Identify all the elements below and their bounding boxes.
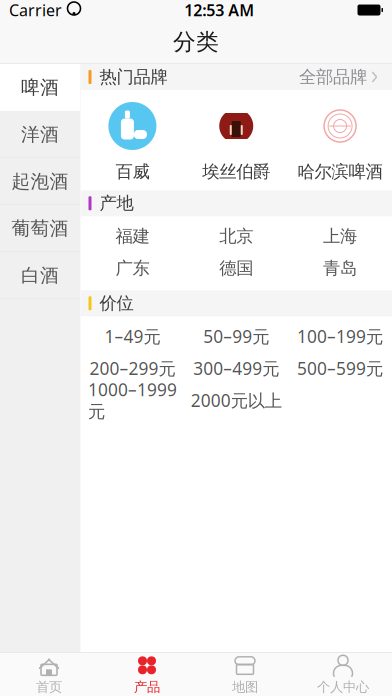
button[interactable]: 300–499元: [184, 352, 288, 384]
button[interactable]: 1000–1999元: [80, 384, 184, 416]
staticText: Carrier: [9, 0, 62, 21]
staticText: 起泡酒: [11, 170, 68, 193]
staticText: 葡萄酒: [11, 217, 68, 240]
staticText: 价位: [99, 293, 133, 314]
staticText: 12:53 AM: [184, 0, 254, 21]
button[interactable]: 北京: [184, 220, 288, 252]
button[interactable]: 个人中心: [294, 650, 392, 696]
staticText: 哈尔滨啤酒: [298, 161, 383, 182]
staticText: 地图: [232, 679, 258, 695]
button[interactable]: 首页: [0, 650, 98, 696]
staticText: 洋酒: [21, 123, 59, 146]
staticText: 产地: [99, 193, 133, 214]
staticText: 广东: [115, 258, 149, 279]
staticText: 个人中心: [317, 679, 369, 695]
staticText: 福建: [115, 226, 149, 247]
staticText: 北京: [219, 226, 253, 247]
button[interactable]: 福建: [80, 220, 184, 252]
button[interactable]: 哈尔滨啤酒: [288, 90, 392, 190]
button[interactable]: 100–199元: [288, 320, 392, 352]
button[interactable]: 上海: [288, 220, 392, 252]
staticText: 200–299元: [89, 357, 175, 380]
button[interactable]: 洋酒: [0, 111, 80, 158]
staticText: 热门品牌: [99, 66, 167, 88]
button[interactable]: 起泡酒: [0, 158, 80, 205]
button[interactable]: 1–49元: [80, 320, 184, 352]
button[interactable]: 200–299元: [80, 352, 184, 384]
staticText: 1–49元: [104, 325, 160, 348]
button[interactable]: 产品: [98, 650, 196, 696]
staticText: 上海: [323, 226, 357, 247]
staticText: 德国: [219, 258, 253, 279]
button[interactable]: 500–599元: [288, 352, 392, 384]
button[interactable]: 埃丝伯爵: [184, 90, 288, 190]
button[interactable]: 全部品牌: [297, 62, 380, 92]
staticText: 500–599元: [297, 357, 383, 380]
button[interactable]: 德国: [184, 252, 288, 284]
staticText: 50–99元: [203, 325, 269, 348]
button[interactable]: 啤酒: [0, 64, 80, 111]
staticText: 全部品牌: [299, 66, 367, 88]
button[interactable]: 地图: [196, 650, 294, 696]
staticText: 首页: [36, 679, 62, 695]
button[interactable]: 葡萄酒: [0, 205, 80, 252]
staticText: 产品: [134, 679, 160, 695]
staticText: 青岛: [323, 258, 357, 279]
staticText: 白酒: [21, 264, 59, 287]
staticText: 埃丝伯爵: [202, 161, 270, 182]
staticText: 1000–1999元: [88, 378, 177, 422]
staticText: 啤酒: [21, 76, 59, 99]
staticText: 分类: [173, 28, 219, 56]
button[interactable]: 百威: [80, 90, 184, 190]
staticText: 2000元以上: [191, 389, 282, 412]
button[interactable]: 广东: [80, 252, 184, 284]
button[interactable]: 2000元以上: [184, 384, 288, 416]
staticText: 100–199元: [297, 325, 383, 348]
staticText: 百威: [115, 161, 149, 182]
staticText: 300–499元: [193, 357, 279, 380]
button[interactable]: 白酒: [0, 252, 80, 299]
button[interactable]: 青岛: [288, 252, 392, 284]
button[interactable]: 50–99元: [184, 320, 288, 352]
